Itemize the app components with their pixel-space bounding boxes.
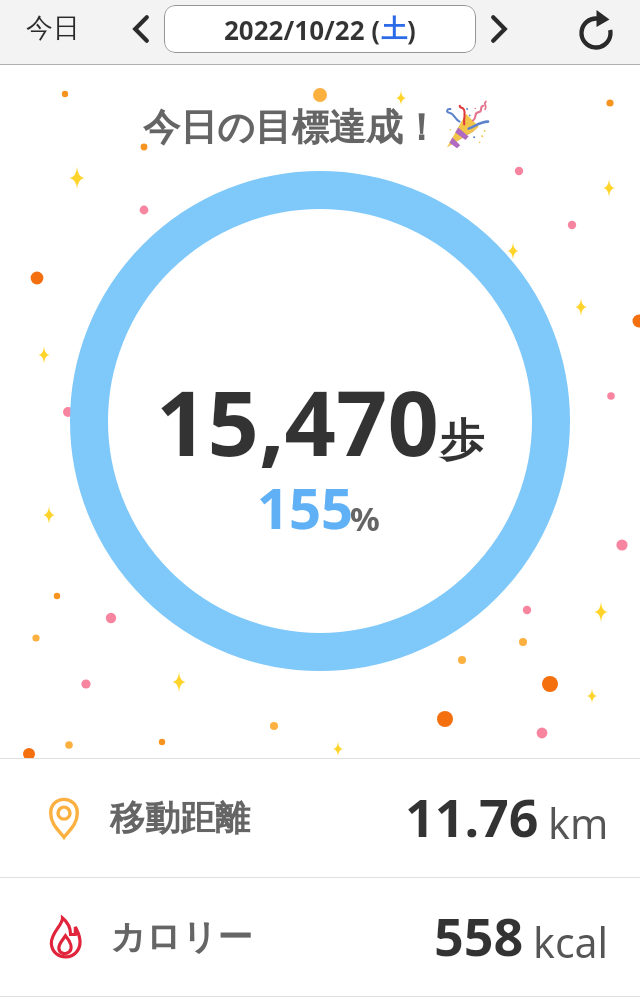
staticText: 155 [257, 469, 354, 545]
staticText: kcal [533, 914, 609, 970]
staticText: カロリー [110, 915, 253, 959]
staticText: % [350, 496, 380, 541]
staticText: 今日 [26, 11, 80, 45]
staticText: 歩 [440, 413, 484, 468]
staticText: 2022/10/22 ( [224, 12, 381, 47]
button[interactable]: 移動距離 [0, 759, 640, 877]
button[interactable]: Previous day [113, 2, 169, 56]
staticText: 土 [381, 13, 407, 46]
button[interactable]: カロリー [0, 878, 640, 996]
button[interactable]: Next day [471, 2, 527, 56]
staticText: 558 [434, 900, 524, 971]
staticText: 15,470 [156, 360, 440, 483]
button[interactable]: Refresh [566, 5, 626, 61]
button[interactable]: 今日 [4, 0, 102, 58]
staticText: 11.76 [405, 781, 539, 852]
button[interactable]: 2022/10/22 ( [164, 5, 476, 53]
staticText: 移動距離 [110, 796, 250, 840]
staticText: ) [407, 12, 416, 47]
staticText: 今日の目標達成！ [143, 104, 440, 151]
staticText: km [548, 795, 609, 851]
